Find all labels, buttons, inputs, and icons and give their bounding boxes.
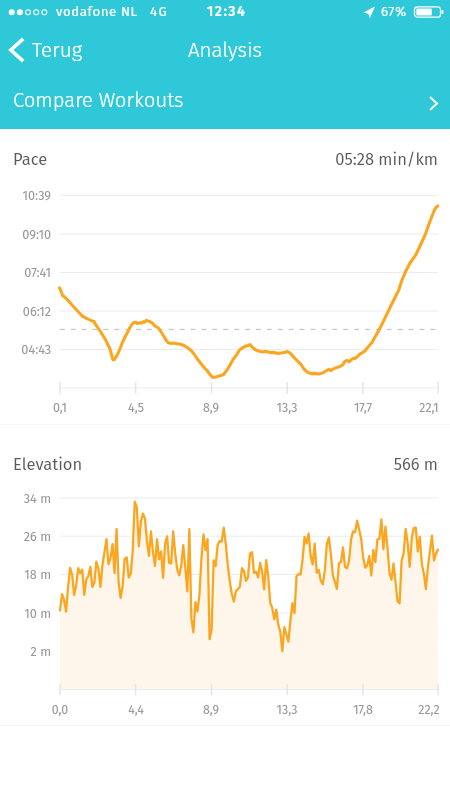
staticText: 17,8 [341, 702, 385, 717]
staticText: Analysis [188, 38, 262, 63]
staticText: 8,9 [189, 400, 233, 415]
staticText: 05:28 min/km [310, 150, 438, 170]
staticText: 13,3 [265, 400, 309, 415]
staticText: 04:43 [11, 342, 51, 357]
staticText: 10 m [11, 606, 51, 621]
staticText: 18 m [11, 567, 51, 582]
staticText: 4,4 [114, 702, 158, 717]
staticText: Pace [13, 150, 48, 170]
staticText: 06:12 [11, 304, 51, 319]
staticText: 22,2 [407, 702, 450, 717]
staticText: 566 m [310, 455, 438, 475]
staticText: 26 m [11, 529, 51, 544]
staticText: Terug [32, 38, 83, 63]
staticText: 10:39 [11, 188, 51, 203]
staticText: 34 m [11, 491, 51, 506]
staticText: 67% [381, 4, 407, 20]
staticText: 22,1 [407, 400, 450, 415]
button[interactable]: Terug [0, 31, 91, 69]
staticText: 0,0 [38, 702, 82, 717]
staticText: 8,9 [189, 702, 233, 717]
staticText: 4G [150, 4, 169, 20]
staticText: 09:10 [11, 227, 51, 242]
other: Compare Workouts [429, 96, 438, 111]
staticText: 0,1 [38, 400, 82, 415]
staticText: Elevation [13, 455, 83, 475]
button[interactable]: Compare Workouts [0, 70, 450, 129]
staticText: 17,7 [341, 400, 385, 415]
staticText: 13,3 [265, 702, 309, 717]
staticText: 12:34 [207, 3, 247, 20]
staticText: 2 m [11, 644, 51, 659]
staticText: Compare Workouts [13, 88, 184, 112]
staticText: 07:41 [11, 265, 51, 280]
staticText: 4,5 [114, 400, 158, 415]
staticText: vodafone NL [56, 4, 138, 20]
